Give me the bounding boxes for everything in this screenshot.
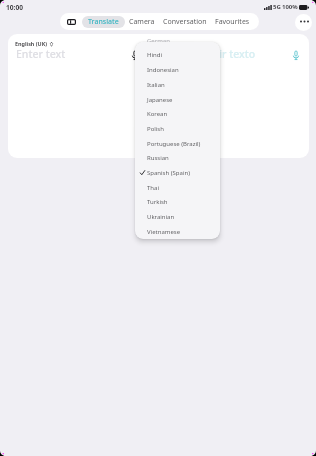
staticText: Camera (129, 17, 155, 27)
staticText: Enter text (16, 47, 66, 61)
staticText: Italian (147, 81, 165, 89)
staticText: 100% (282, 3, 298, 11)
staticText: Hindi (147, 51, 162, 59)
staticText: Russian (147, 154, 169, 162)
button[interactable]: English (UK) (15, 40, 53, 47)
staticText: Ukrainian (147, 213, 175, 221)
button[interactable]: Russian (135, 150, 220, 165)
button[interactable]: Ukrainian (135, 209, 220, 224)
staticText: Japanese (147, 96, 173, 104)
staticText: German (147, 37, 170, 45)
button[interactable]: Portuguese (Brazil) (135, 136, 220, 151)
button[interactable]: Vietnamese (135, 224, 220, 239)
staticText: English (UK) (15, 40, 48, 47)
button[interactable]: Translate (82, 16, 125, 28)
staticText: 5G (273, 3, 281, 11)
button[interactable]: More options (295, 14, 312, 31)
staticText: Indonesian (147, 66, 179, 74)
staticText: Conversation (163, 17, 207, 27)
staticText: Translate (88, 17, 119, 27)
button[interactable]: Polish (135, 121, 220, 136)
button[interactable]: Japanese (135, 92, 220, 107)
staticText: Introducir texto (176, 47, 256, 61)
button[interactable]: Voice input Spanish (288, 48, 303, 63)
staticText: Favourites (215, 17, 250, 27)
button[interactable]: Turkish (135, 194, 220, 209)
button[interactable]: Indonesian (135, 62, 220, 77)
button[interactable]: Camera (125, 13, 159, 30)
button[interactable]: Thai (135, 180, 220, 195)
staticText: Thai (147, 184, 159, 192)
staticText: 10:00 (6, 3, 23, 12)
staticText: Turkish (147, 198, 168, 206)
button[interactable]: Korean (135, 106, 220, 121)
staticText: Korean (147, 110, 168, 118)
button[interactable]: Split view (60, 13, 82, 30)
button[interactable]: Hindi (135, 47, 220, 62)
staticText: Polish (147, 125, 164, 133)
staticText: Portuguese (Brazil) (147, 140, 201, 148)
staticText: Vietnamese (147, 228, 181, 236)
staticText: Spanish (Spain) (147, 169, 190, 177)
button[interactable]: Favourites (211, 13, 254, 30)
button[interactable]: Voice input English (127, 48, 142, 63)
button[interactable]: Italian (135, 77, 220, 92)
button[interactable]: Conversation (159, 13, 211, 30)
button[interactable]: Spanish (Spain) (135, 165, 220, 180)
